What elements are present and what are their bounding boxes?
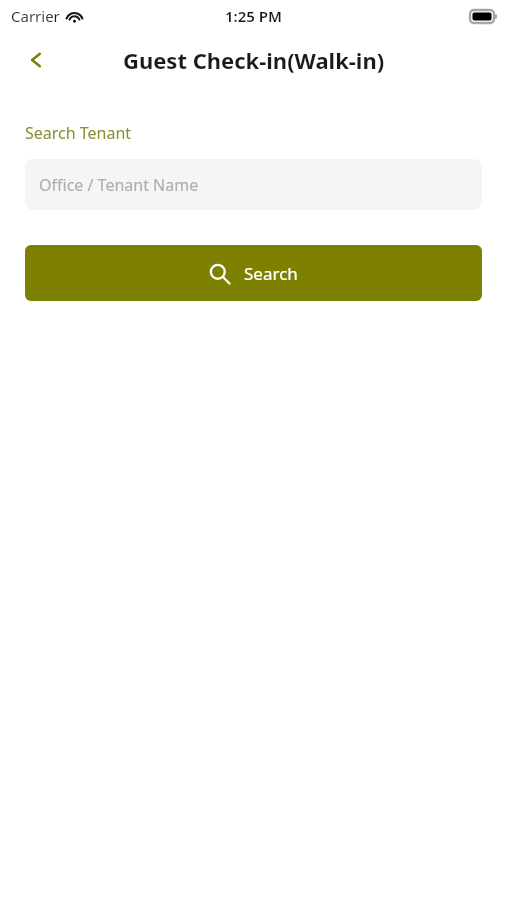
staticText: Carrier xyxy=(11,6,60,26)
staticText: Search xyxy=(244,262,298,285)
staticText: Office / Tenant Name xyxy=(39,174,199,196)
staticText: Guest Check-in(Walk-in) xyxy=(123,45,385,75)
staticText: Search Tenant xyxy=(25,122,132,144)
button[interactable]: Search xyxy=(25,245,482,301)
button[interactable]: Office / Tenant Name xyxy=(25,159,482,210)
button[interactable]: Back xyxy=(14,38,58,82)
staticText: 1:25 PM xyxy=(225,6,282,26)
